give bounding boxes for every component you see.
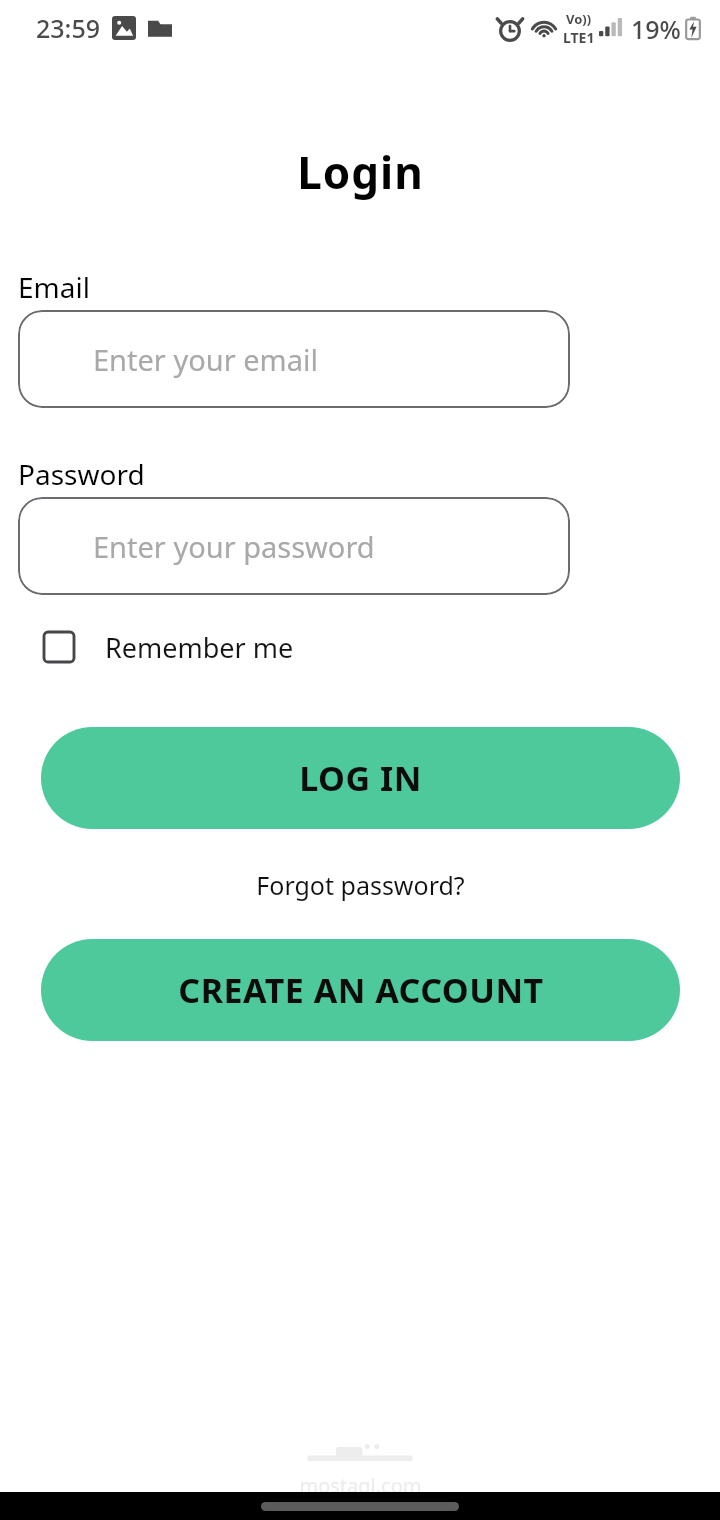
staticText: Password	[18, 455, 145, 493]
button[interactable]: Enter your email	[18, 310, 570, 408]
button[interactable]: LOG IN	[41, 727, 680, 829]
button[interactable]: Remember me	[30, 618, 306, 676]
staticText: LOG IN	[299, 755, 422, 801]
staticText: Vo))	[566, 10, 592, 28]
staticText: CREATE AN ACCOUNT	[178, 967, 544, 1013]
staticText: Remember me	[105, 629, 294, 666]
staticText: Enter your email	[93, 340, 318, 379]
staticText: Login	[297, 142, 424, 202]
button[interactable]: CREATE AN ACCOUNT	[41, 939, 680, 1041]
staticText: 19%	[631, 12, 681, 46]
staticText: Email	[18, 268, 90, 306]
button[interactable]: Forgot password?	[242, 860, 479, 910]
staticText: LTE1	[563, 28, 595, 47]
button[interactable]: Enter your password	[18, 497, 570, 595]
staticText: 23:59	[36, 11, 101, 45]
staticText: mostaql.com	[299, 1472, 422, 1499]
staticText: Enter your password	[93, 527, 375, 566]
